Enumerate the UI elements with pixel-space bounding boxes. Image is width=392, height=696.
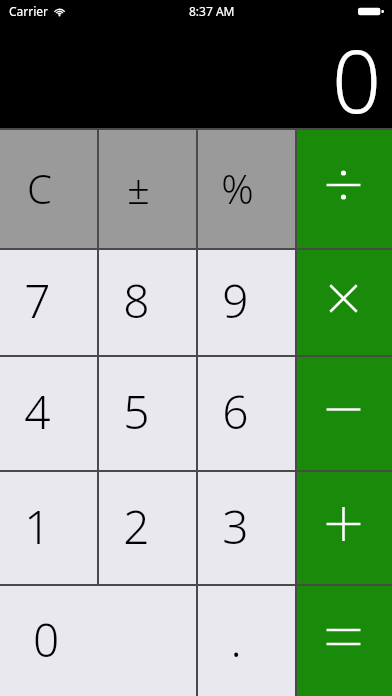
button[interactable]: 7 bbox=[0, 250, 97, 355]
staticText: 8:37 AM bbox=[189, 3, 235, 19]
staticText: 5 bbox=[123, 380, 150, 443]
button[interactable]: ± bbox=[99, 130, 196, 248]
button[interactable]: . bbox=[198, 586, 295, 696]
staticText: 4 bbox=[24, 380, 51, 443]
staticText: 0 bbox=[33, 608, 60, 671]
button[interactable]: 9 bbox=[198, 250, 295, 355]
button[interactable]: 2 bbox=[99, 472, 196, 584]
button[interactable]: 1 bbox=[0, 472, 97, 584]
staticText: Carrier bbox=[9, 3, 49, 19]
button[interactable]: Equals bbox=[297, 586, 392, 696]
button[interactable]: Multiply bbox=[297, 250, 392, 355]
button[interactable]: % bbox=[198, 130, 295, 248]
button[interactable]: 0 bbox=[0, 586, 196, 696]
button[interactable]: 8 bbox=[99, 250, 196, 355]
button[interactable]: Add bbox=[297, 472, 392, 584]
staticText: 3 bbox=[222, 495, 249, 558]
button[interactable]: 6 bbox=[198, 357, 295, 470]
button[interactable]: Divide bbox=[297, 130, 392, 248]
button[interactable]: 5 bbox=[99, 357, 196, 470]
staticText: 2 bbox=[123, 495, 150, 558]
staticText: C bbox=[27, 161, 52, 215]
button[interactable]: 3 bbox=[198, 472, 295, 584]
staticText: % bbox=[221, 161, 254, 215]
staticText: 6 bbox=[222, 380, 249, 443]
staticText: 1 bbox=[24, 495, 51, 558]
button[interactable]: 4 bbox=[0, 357, 97, 470]
staticText: 0 bbox=[332, 21, 382, 127]
staticText: ± bbox=[127, 161, 150, 215]
button[interactable]: C bbox=[0, 130, 97, 248]
button[interactable]: Subtract bbox=[297, 357, 392, 470]
staticText: . bbox=[230, 608, 242, 671]
staticText: 8 bbox=[123, 269, 150, 332]
staticText: 9 bbox=[222, 269, 249, 332]
staticText: 7 bbox=[24, 269, 51, 332]
